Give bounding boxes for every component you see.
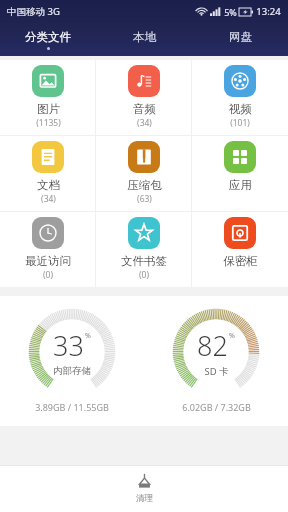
button[interactable]: 文档 [0, 136, 96, 211]
staticText: 内部存储 [53, 365, 91, 377]
staticText: 文件书签 [121, 254, 167, 268]
staticText: 应用 [229, 178, 252, 192]
button[interactable]: 网盘 [192, 23, 288, 56]
staticText: 分类文件 [25, 30, 71, 44]
staticText: 5% [224, 6, 237, 18]
staticText: (34) [137, 117, 152, 129]
staticText: 3.89GB / 11.55GB [35, 401, 109, 413]
button[interactable]: 图片 [0, 60, 96, 135]
staticText: 82 [197, 327, 228, 364]
staticText: 13:24 [256, 5, 281, 18]
staticText: 图片 [37, 102, 60, 116]
staticText: (34) [41, 193, 56, 205]
staticText: SD 卡 [204, 365, 229, 378]
button[interactable]: 分类文件 [0, 23, 96, 56]
button[interactable]: 压缩包 [96, 136, 192, 211]
staticText: 视频 [229, 102, 252, 116]
staticText: 音频 [133, 102, 156, 116]
staticText: 文档 [37, 178, 60, 192]
button[interactable]: 视频 [192, 60, 288, 135]
staticText: % [85, 331, 91, 341]
staticText: (63) [137, 193, 152, 205]
staticText: 6.02GB / 7.32GB [182, 401, 251, 413]
staticText: 最近访问 [25, 254, 71, 268]
staticText: 保密柜 [223, 254, 258, 268]
staticText: 中国移动 3G [7, 5, 60, 18]
staticText: 清理 [136, 493, 153, 504]
staticText: (0) [43, 269, 53, 281]
staticText: 本地 [133, 30, 156, 44]
staticText: 33 [53, 327, 84, 364]
staticText: 压缩包 [127, 178, 162, 192]
staticText: (1135) [36, 117, 61, 129]
button[interactable]: 清理 [118, 469, 171, 508]
staticText: (0) [139, 269, 149, 281]
button[interactable]: 33 [0, 296, 144, 426]
button[interactable]: 本地 [96, 23, 192, 56]
staticText: % [229, 331, 235, 341]
button[interactable]: 保密柜 [192, 212, 288, 287]
button[interactable]: 文件书签 [96, 212, 192, 287]
button[interactable]: 音频 [96, 60, 192, 135]
button[interactable]: 最近访问 [0, 212, 96, 287]
staticText: (101) [230, 117, 250, 129]
staticText: 网盘 [229, 30, 252, 44]
button[interactable]: 应用 [192, 136, 288, 211]
button[interactable]: 82 [144, 296, 288, 426]
